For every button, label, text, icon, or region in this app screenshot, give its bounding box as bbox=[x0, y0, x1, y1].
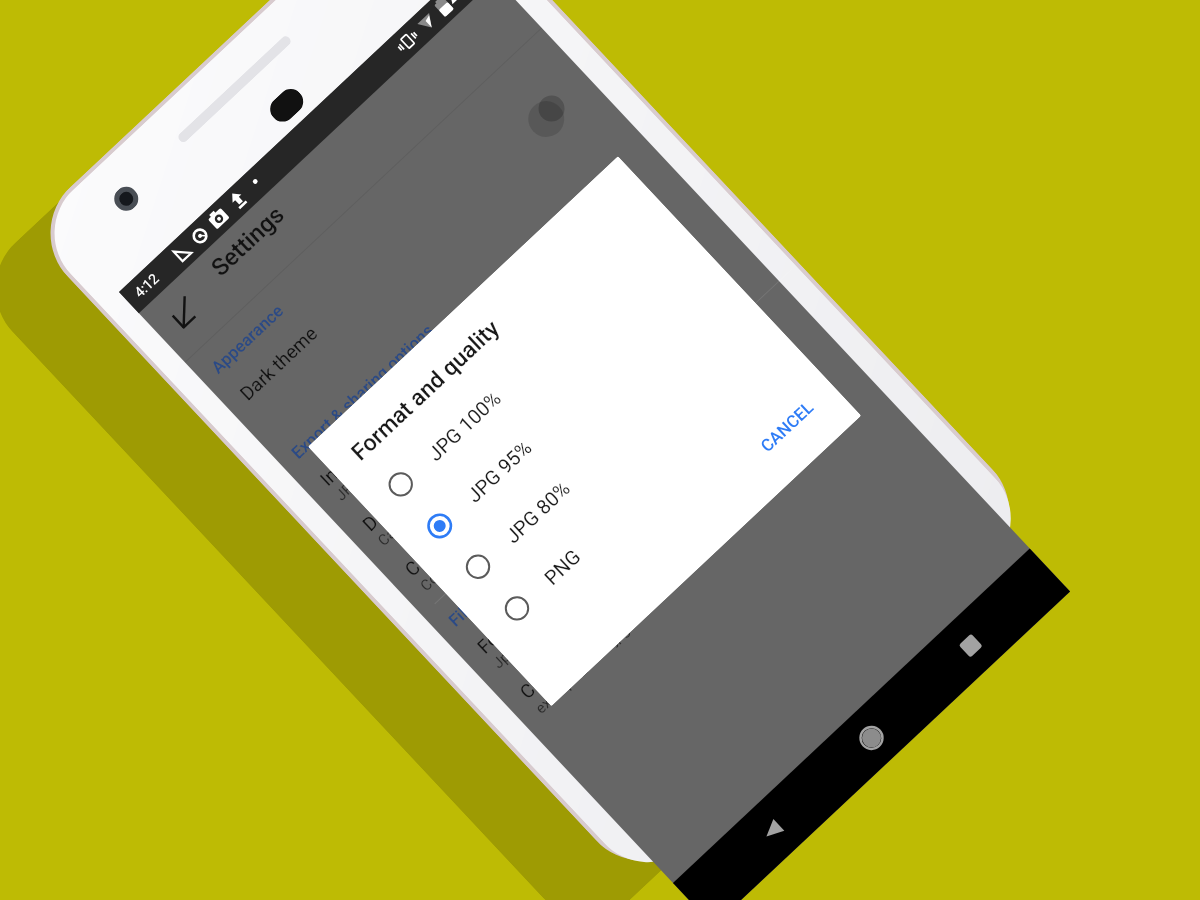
staticText: JPG 100% bbox=[423, 386, 505, 465]
staticText: Counter bbox=[515, 641, 579, 703]
staticText: JPG 95% bbox=[332, 450, 388, 504]
button[interactable]: CANCEL bbox=[737, 379, 836, 475]
staticText: Export & sharing options bbox=[287, 320, 437, 463]
staticText: Image format bbox=[315, 395, 414, 490]
button[interactable]: Copy to clipboard bbox=[380, 235, 779, 615]
staticText: JPG 95% bbox=[462, 435, 536, 507]
staticText: CANCEL bbox=[757, 397, 818, 456]
staticText: Copy to clipboard bbox=[400, 463, 523, 580]
staticText: Settings bbox=[206, 201, 290, 282]
staticText: Format and quality bbox=[346, 314, 505, 466]
button[interactable]: PNG bbox=[471, 330, 820, 662]
staticText: Dark theme bbox=[235, 321, 322, 404]
button[interactable]: Dark theme bbox=[215, 60, 606, 431]
staticText: Format bbox=[473, 600, 532, 658]
staticText: PNG bbox=[539, 544, 585, 589]
staticText: Default directory bbox=[358, 423, 475, 535]
staticText: Camera bbox=[374, 501, 424, 550]
button[interactable]: Default directory bbox=[337, 190, 736, 570]
button[interactable]: Counter bbox=[494, 358, 894, 738]
staticText: example_0023.jpg bbox=[532, 621, 633, 717]
staticText: File name bbox=[445, 565, 512, 630]
staticText: Jpeg bbox=[489, 636, 526, 672]
staticText: Appearance bbox=[207, 300, 287, 377]
button[interactable]: JPG 80% bbox=[432, 289, 781, 620]
staticText: JPG 80% bbox=[500, 476, 574, 547]
button[interactable]: JPG 95% bbox=[394, 248, 742, 579]
button[interactable]: Format bbox=[452, 313, 851, 693]
staticText: Copy the image to the clipboard bbox=[417, 437, 584, 595]
staticText: 4:12 bbox=[131, 270, 162, 300]
button[interactable]: JPG 100% bbox=[355, 206, 703, 538]
button[interactable]: Image format bbox=[295, 145, 694, 525]
button[interactable]: Navigate up bbox=[154, 281, 216, 344]
